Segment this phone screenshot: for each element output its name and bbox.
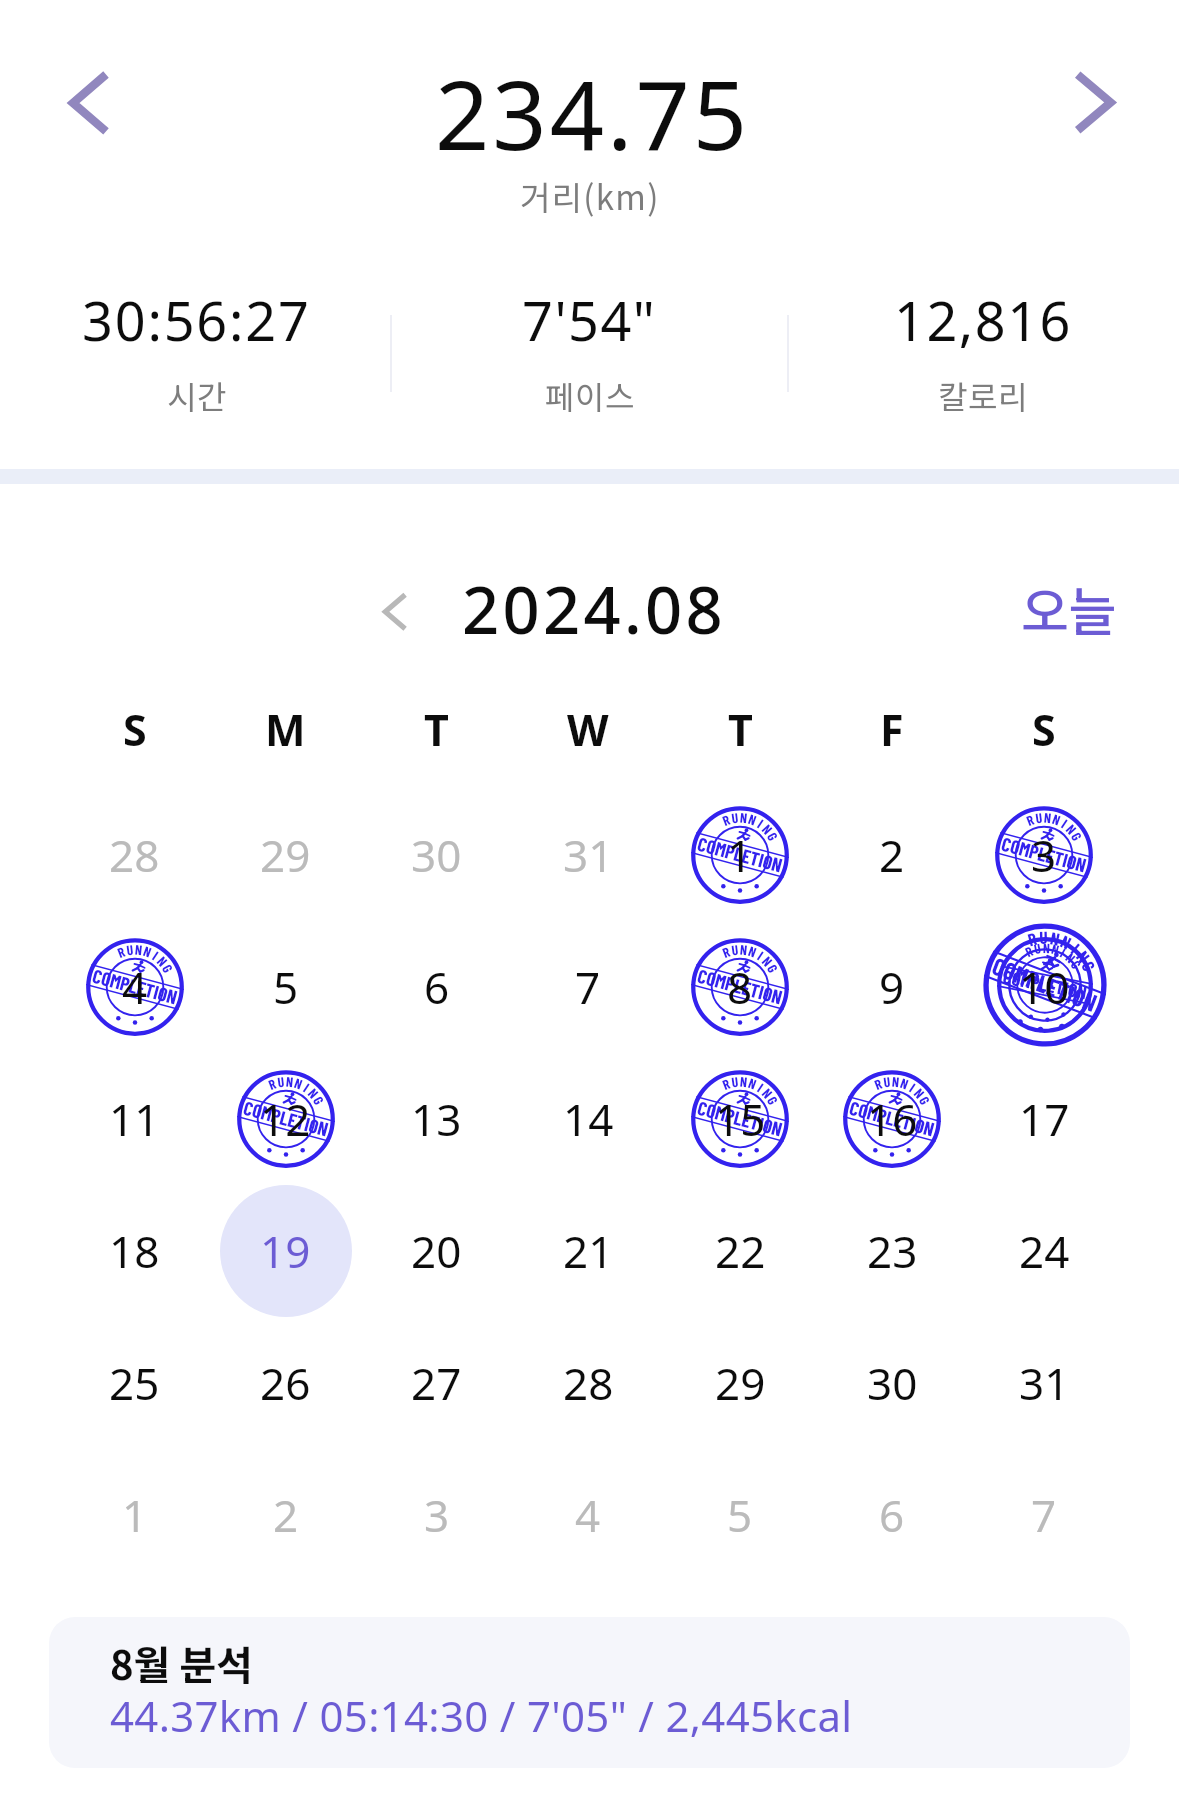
button[interactable]: 6 — [816, 1449, 968, 1581]
staticText: 9 — [879, 957, 905, 1017]
staticText: W — [567, 700, 609, 759]
button[interactable]: Previous — [45, 59, 134, 148]
button[interactable]: 11 — [59, 1053, 210, 1185]
button[interactable]: 28 — [512, 1317, 664, 1449]
staticText: 2 — [879, 825, 905, 885]
staticText: 7 — [1031, 1485, 1057, 1545]
staticText: 19 — [260, 1221, 311, 1281]
staticText: 3 — [1031, 825, 1057, 885]
button[interactable]: 2 — [816, 789, 968, 921]
staticText: 12 — [260, 1089, 311, 1149]
button[interactable]: 27 — [361, 1317, 512, 1449]
staticText: 6 — [424, 957, 450, 1017]
staticText: 25 — [109, 1353, 160, 1413]
button[interactable]: 16 — [816, 1053, 968, 1185]
staticText: 2 — [273, 1485, 299, 1545]
staticText: 22 — [715, 1221, 766, 1281]
staticText: 28 — [563, 1353, 614, 1413]
staticText: 17 — [1019, 1089, 1070, 1149]
button[interactable]: 14 — [512, 1053, 664, 1185]
staticText: 23 — [867, 1221, 918, 1281]
staticText: 24 — [1019, 1221, 1070, 1281]
button[interactable]: 17 — [968, 1053, 1120, 1185]
button[interactable]: 7'54" — [393, 283, 786, 418]
button[interactable]: 15 — [664, 1053, 816, 1185]
staticText: 13 — [411, 1089, 462, 1149]
button[interactable]: 12 — [210, 1053, 361, 1185]
staticText: 1 — [122, 1485, 148, 1545]
button[interactable]: 8 — [664, 921, 816, 1053]
button[interactable]: 5 — [210, 921, 361, 1053]
button[interactable]: 29 — [210, 789, 361, 921]
button[interactable]: 4 — [59, 921, 210, 1053]
button[interactable]: 29 — [664, 1317, 816, 1449]
staticText: T — [424, 700, 449, 759]
staticText: T — [728, 700, 753, 759]
button[interactable]: 3 — [361, 1449, 512, 1581]
staticText: 12,816 — [894, 283, 1072, 357]
staticText: 28 — [109, 825, 160, 885]
button[interactable]: Previous month — [374, 584, 432, 642]
button[interactable]: 1 — [664, 789, 816, 921]
button[interactable]: 19 — [210, 1185, 361, 1317]
staticText: S — [123, 700, 147, 759]
staticText: 29 — [715, 1353, 766, 1413]
staticText: 3 — [424, 1485, 450, 1545]
button[interactable]: 7 — [968, 1449, 1120, 1581]
staticText: 15 — [715, 1089, 766, 1149]
staticText: 11 — [109, 1089, 160, 1149]
staticText: 1 — [727, 825, 753, 885]
button[interactable]: 21 — [512, 1185, 664, 1317]
staticText: 16 — [867, 1089, 918, 1149]
button[interactable]: 31 — [968, 1317, 1120, 1449]
staticText: 거리(km) — [520, 172, 660, 220]
button[interactable]: 30 — [816, 1317, 968, 1449]
staticText: 21 — [563, 1221, 614, 1281]
staticText: 30 — [411, 825, 462, 885]
button[interactable]: 31 — [512, 789, 664, 921]
button[interactable]: 5 — [664, 1449, 816, 1581]
staticText: 오늘 — [1021, 571, 1117, 646]
staticText: 44.37km / 05:14:30 / 7'05" / 2,445kcal — [110, 1687, 853, 1744]
staticText: S — [1032, 700, 1056, 759]
button[interactable]: 22 — [664, 1185, 816, 1317]
staticText: 칼로리 — [938, 372, 1028, 418]
staticText: 2024.08 — [462, 565, 726, 654]
staticText: 234.75 — [435, 48, 751, 177]
staticText: 4 — [575, 1485, 601, 1545]
button[interactable]: Next — [1047, 59, 1136, 148]
staticText: 7 — [575, 957, 601, 1017]
button[interactable]: 6 — [361, 921, 512, 1053]
button[interactable]: 오늘 — [1021, 571, 1117, 646]
button[interactable]: 7 — [512, 921, 664, 1053]
button[interactable]: 18 — [59, 1185, 210, 1317]
button[interactable]: 24 — [968, 1185, 1120, 1317]
staticText: 18 — [109, 1221, 160, 1281]
button[interactable]: 1 — [59, 1449, 210, 1581]
button[interactable]: 30:56:27 — [0, 283, 393, 418]
staticText: 14 — [563, 1089, 614, 1149]
staticText: 8 — [727, 957, 753, 1017]
button[interactable]: 23 — [816, 1185, 968, 1317]
button[interactable]: 26 — [210, 1317, 361, 1449]
staticText: 31 — [563, 825, 614, 885]
staticText: 20 — [411, 1221, 462, 1281]
staticText: F — [880, 700, 904, 759]
button[interactable]: 12,816 — [786, 283, 1179, 418]
button[interactable]: 28 — [59, 789, 210, 921]
staticText: M — [265, 700, 306, 759]
button[interactable]: 20 — [361, 1185, 512, 1317]
staticText: 30 — [867, 1353, 918, 1413]
button[interactable]: 9 — [816, 921, 968, 1053]
button[interactable]: 30 — [361, 789, 512, 921]
button[interactable]: 4 — [512, 1449, 664, 1581]
button[interactable]: 2 — [210, 1449, 361, 1581]
button[interactable]: 25 — [59, 1317, 210, 1449]
staticText: 8월 분석 — [110, 1634, 254, 1692]
button[interactable]: 3 — [968, 789, 1120, 921]
button[interactable]: 8월 분석 — [49, 1617, 1130, 1768]
staticText: 5 — [727, 1485, 753, 1545]
button[interactable]: 13 — [361, 1053, 512, 1185]
staticText: 26 — [260, 1353, 311, 1413]
button[interactable]: 10 — [968, 921, 1120, 1053]
